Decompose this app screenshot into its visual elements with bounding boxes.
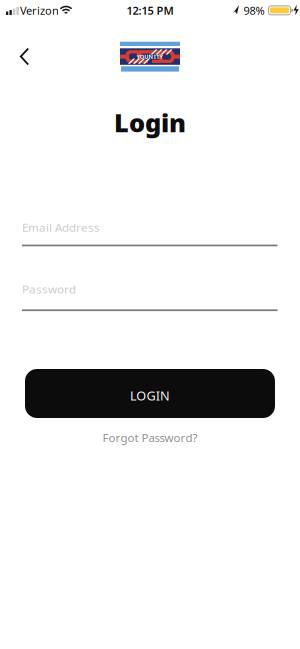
button[interactable]: Password bbox=[22, 281, 277, 311]
staticText: YOUNITY bbox=[136, 53, 164, 60]
staticText: Email Address bbox=[22, 219, 100, 235]
button[interactable]: LOGIN bbox=[25, 369, 275, 418]
staticText: LOGIN bbox=[130, 387, 170, 404]
staticText: Password bbox=[22, 281, 76, 297]
staticText: Login bbox=[114, 105, 186, 140]
staticText: 98% bbox=[243, 3, 264, 18]
button[interactable]: Forgot Password? bbox=[102, 430, 197, 445]
staticText: Verizon bbox=[20, 3, 59, 18]
button[interactable]: Back bbox=[9, 41, 39, 71]
staticText: Forgot Password? bbox=[102, 430, 197, 445]
button[interactable]: Email Address bbox=[22, 219, 277, 246]
staticText: 12:15 PM bbox=[126, 3, 173, 18]
